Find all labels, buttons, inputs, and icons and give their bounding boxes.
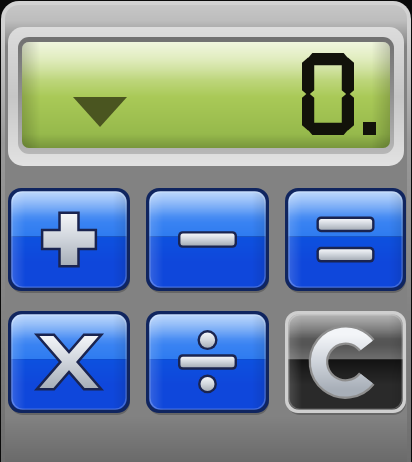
- button[interactable]: Clear: [285, 311, 406, 413]
- button[interactable]: Multiply: [8, 311, 130, 413]
- button[interactable]: Minus: [146, 188, 269, 291]
- button[interactable]: Equals: [285, 188, 406, 291]
- button[interactable]: Plus: [8, 188, 130, 291]
- button[interactable]: Divide: [146, 311, 269, 413]
